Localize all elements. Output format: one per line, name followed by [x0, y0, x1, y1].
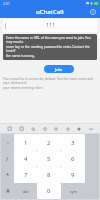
- button[interactable]: /: [1, 151, 14, 167]
- staticText: #: [6, 187, 10, 195]
- staticText: abc: [23, 189, 29, 194]
- button[interactable]: *: [1, 167, 14, 183]
- button[interactable]: 2: [37, 134, 61, 151]
- staticText: 2: [47, 139, 51, 147]
- button[interactable]: 4: [14, 151, 37, 167]
- staticText: 6: [71, 155, 75, 163]
- button[interactable]: 0: [37, 183, 61, 199]
- button[interactable]: 3: [61, 134, 85, 151]
- staticText: sym: [70, 189, 77, 194]
- staticText: /: [6, 155, 9, 163]
- button[interactable]: 5: [37, 151, 61, 167]
- button[interactable]: Keyboard tool 4: [41, 125, 48, 132]
- staticText: 1: [24, 139, 28, 147]
- staticText: 8: [47, 171, 51, 179]
- staticText: 2:51: [3, 1, 10, 6]
- button[interactable]: Keyboard tool 5: [52, 125, 59, 132]
- staticText: 111: [46, 22, 55, 29]
- button[interactable]: Join: [44, 65, 74, 73]
- staticText: 4: [24, 155, 28, 163]
- button[interactable]: sym: [61, 183, 85, 199]
- staticText: 3: [71, 139, 75, 147]
- staticText: room key or the meeting password to ente…: [6, 45, 94, 53]
- staticText: 0: [47, 187, 51, 195]
- staticText: uChatCall: [36, 8, 64, 16]
- button[interactable]: Info: [89, 8, 97, 16]
- staticText: 5: [47, 155, 51, 163]
- button[interactable]: #: [1, 183, 14, 199]
- staticText: your recent meetings here.: [3, 86, 44, 90]
- button[interactable]: abc: [14, 183, 37, 199]
- button[interactable]: Keyboard tool 1: [6, 125, 13, 132]
- staticText: -: [7, 139, 9, 147]
- button[interactable]: Keyboard tool 2: [18, 125, 25, 132]
- staticText: *: [6, 171, 10, 179]
- button[interactable]: 7: [14, 167, 37, 183]
- staticText: Join: [55, 67, 63, 72]
- staticText: 7: [24, 171, 28, 179]
- staticText: Enter the name or URL of the room you wa…: [6, 36, 94, 44]
- button[interactable]: 9: [61, 167, 85, 183]
- staticText: You cannot be in a room by default. Use …: [3, 77, 97, 85]
- button[interactable]: Keyboard tool 7: [75, 125, 82, 132]
- button[interactable]: 111: [3, 19, 97, 32]
- button[interactable]: 1: [14, 134, 37, 151]
- button[interactable]: Keyboard tool 8: [87, 125, 94, 132]
- staticText: 9: [71, 171, 75, 179]
- button[interactable]: 8: [37, 167, 61, 183]
- button[interactable]: Keyboard tool 3: [29, 125, 36, 132]
- button[interactable]: 6: [61, 151, 85, 167]
- button[interactable]: -: [1, 134, 14, 151]
- button[interactable]: Keyboard tool 6: [64, 125, 71, 132]
- staticText: the name is wrong.: [6, 54, 35, 58]
